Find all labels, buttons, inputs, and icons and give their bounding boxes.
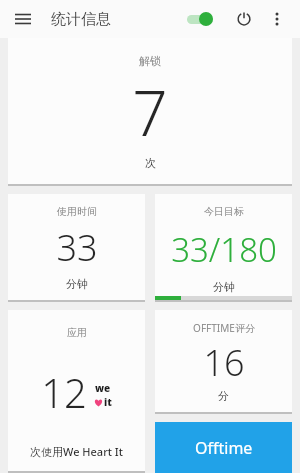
staticText: OFFTIME评分	[193, 321, 255, 335]
button[interactable]: OFFTIME评分	[155, 310, 292, 414]
staticText: 33/180	[171, 227, 277, 272]
staticText: 使用时间	[57, 205, 97, 218]
staticText: 分钟	[213, 280, 235, 294]
button[interactable]: 使用时间	[8, 194, 145, 302]
staticText: 7	[132, 70, 168, 154]
staticText: it	[104, 395, 112, 409]
staticText: Offtime	[195, 437, 253, 459]
button[interactable]: Power	[232, 7, 256, 31]
staticText: 应用	[67, 326, 87, 339]
staticText: 次	[145, 156, 156, 170]
staticText: 分钟	[66, 277, 88, 291]
staticText: 12	[41, 365, 87, 419]
button[interactable]: Toggle	[184, 8, 218, 30]
staticText: 统计信息	[51, 10, 111, 29]
button[interactable]: Menu	[12, 8, 34, 30]
staticText: 次使用We Heart It	[30, 444, 123, 459]
button[interactable]: 今日目标	[155, 194, 292, 296]
staticText: 今日目标	[204, 205, 244, 218]
staticText: 分	[218, 389, 229, 403]
staticText: 33	[56, 223, 98, 272]
staticText: 解锁	[139, 54, 161, 68]
button[interactable]: More options	[266, 8, 288, 30]
button[interactable]: Offtime	[155, 422, 292, 473]
button[interactable]: 应用	[8, 310, 145, 473]
button[interactable]: 解锁	[8, 38, 292, 186]
staticText: 16	[203, 338, 245, 387]
staticText: we	[95, 381, 111, 395]
